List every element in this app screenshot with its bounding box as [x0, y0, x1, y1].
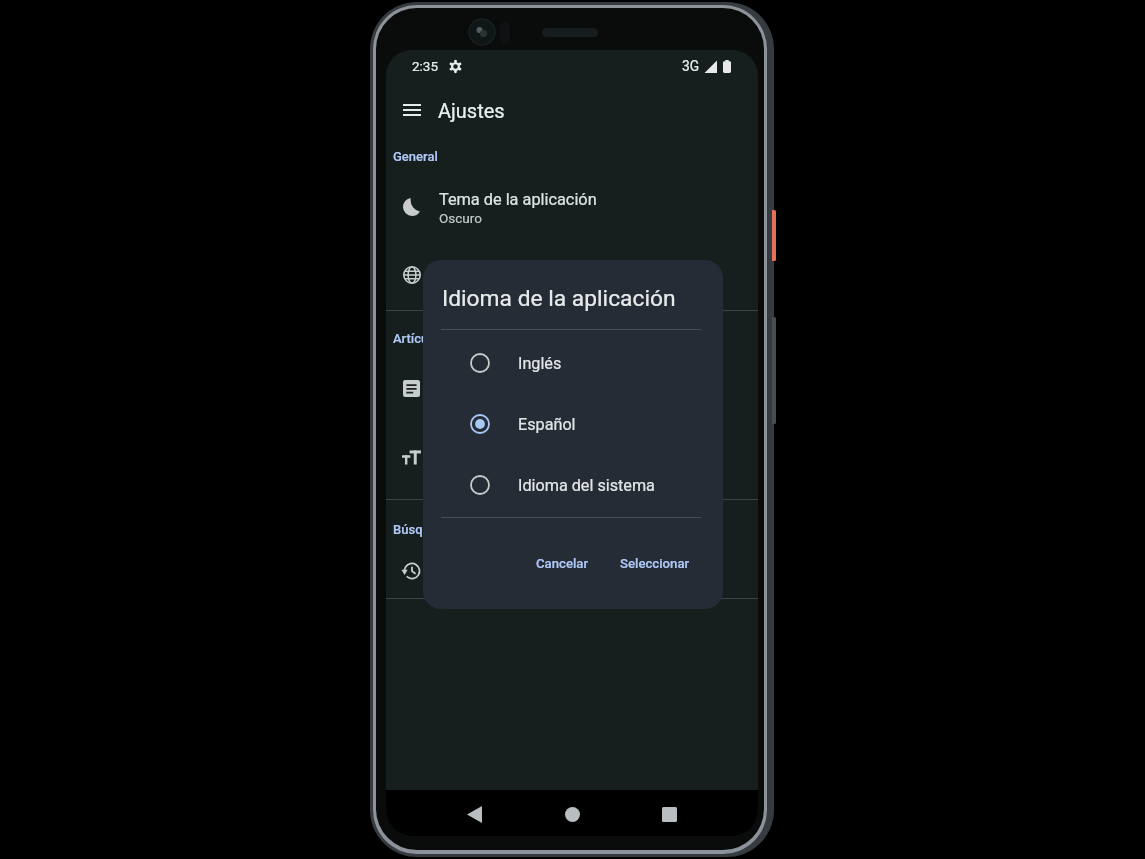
staticText: Ajustes	[438, 99, 505, 122]
staticText: Artículos	[393, 331, 446, 346]
staticText: 2:35	[412, 58, 439, 74]
button[interactable]: Tema de la aplicación	[386, 172, 758, 240]
staticText: Cancelar	[536, 556, 589, 571]
button[interactable]: Historial de búsqueda	[386, 542, 758, 598]
staticText: Normal	[439, 461, 484, 477]
staticText: Historial de búsqueda	[439, 561, 598, 580]
button[interactable]: Home	[554, 796, 590, 832]
staticText: Español	[439, 278, 488, 294]
staticText: Idioma del sistema	[518, 476, 655, 495]
button[interactable]: Inglés	[423, 333, 723, 393]
button[interactable]: Open navigation menu	[388, 86, 436, 134]
staticText: Español	[518, 415, 576, 434]
button[interactable]: Vista de artículos	[386, 354, 758, 422]
button[interactable]: Seleccionar	[612, 547, 698, 579]
button[interactable]: Recent apps	[651, 796, 687, 832]
button[interactable]: Idioma de la aplicación	[386, 240, 758, 308]
staticText: Oscuro	[439, 210, 482, 226]
staticText: Idioma de la aplicación	[439, 258, 606, 277]
staticText: General	[393, 149, 438, 164]
button[interactable]: Cancelar	[528, 547, 597, 579]
staticText: 3G	[682, 58, 700, 74]
staticText: Seleccionar	[620, 556, 690, 571]
button[interactable]: Idioma del sistema	[423, 455, 723, 515]
staticText: Tema de la aplicación	[439, 190, 597, 209]
button[interactable]: Tamaño del texto	[386, 423, 758, 491]
staticText: Búsqueda	[393, 522, 452, 537]
staticText: Idioma de la aplicación	[442, 285, 676, 312]
staticText: Vista de artículos	[439, 372, 566, 391]
button[interactable]: Back	[456, 796, 492, 832]
staticText: Inglés	[518, 354, 562, 373]
button[interactable]: Español	[423, 394, 723, 454]
